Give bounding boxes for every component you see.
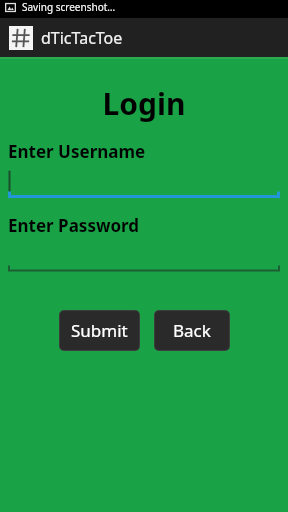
button[interactable]: Submit — [60, 311, 139, 350]
staticText: Back — [173, 319, 211, 342]
button[interactable] — [8, 163, 280, 198]
staticText: Enter Username — [8, 140, 146, 163]
button[interactable]: Back — [155, 311, 229, 350]
staticText: dTicTacToe — [41, 27, 123, 49]
staticText: Enter Password — [8, 214, 140, 237]
staticText: Saving screenshot… — [22, 0, 116, 14]
staticText: Submit — [71, 319, 128, 342]
button[interactable] — [8, 237, 280, 272]
staticText: Login — [0, 83, 288, 124]
